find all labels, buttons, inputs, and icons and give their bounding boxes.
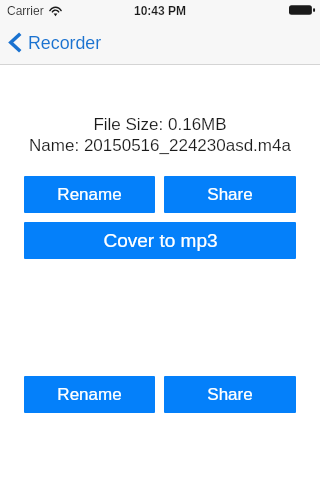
- other: Battery full: [289, 4, 315, 16]
- staticText: Rename: [57, 385, 122, 404]
- staticText: Carrier: [7, 4, 44, 17]
- other: Back: [9, 32, 22, 53]
- staticText: Cover to mp3: [103, 230, 218, 251]
- staticText: Name: 20150516_224230asd.m4a: [0, 136, 320, 155]
- button[interactable]: Cover to mp3: [24, 222, 296, 259]
- other: Wi-Fi signal: [49, 5, 62, 16]
- staticText: File Size: 0.16MB: [0, 115, 320, 134]
- button[interactable]: Back: [0, 29, 112, 56]
- staticText: Share: [207, 385, 253, 404]
- button[interactable]: Rename: [24, 176, 155, 213]
- staticText: Share: [207, 185, 253, 204]
- button[interactable]: Share: [164, 176, 296, 213]
- button[interactable]: Rename: [24, 376, 155, 413]
- staticText: Rename: [57, 185, 122, 204]
- button[interactable]: Share: [164, 376, 296, 413]
- staticText: Recorder: [28, 33, 102, 53]
- staticText: 10:43 PM: [134, 4, 187, 17]
